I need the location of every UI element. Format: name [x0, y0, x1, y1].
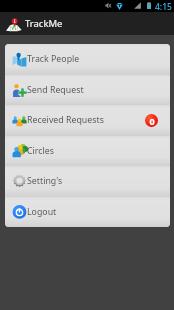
staticText: Logout — [27, 206, 57, 218]
staticText: Circles — [27, 145, 54, 157]
button[interactable]: Send Request — [5, 75, 170, 105]
staticText: 4:15 — [155, 1, 172, 13]
button[interactable]: Received Requests — [5, 105, 170, 136]
button[interactable]: Circles — [5, 136, 170, 166]
staticText: 0 — [149, 115, 155, 127]
staticText: Setting's — [27, 175, 63, 187]
staticText: Send Request — [27, 84, 84, 96]
staticText: Received Requests — [27, 114, 104, 126]
staticText: Track People — [27, 53, 80, 65]
staticText: TrackMe — [25, 17, 63, 30]
button[interactable]: Track People — [5, 44, 170, 75]
button[interactable]: Setting's — [5, 166, 170, 197]
button[interactable]: Logout — [5, 197, 170, 227]
other: 0 new requests — [145, 114, 158, 127]
